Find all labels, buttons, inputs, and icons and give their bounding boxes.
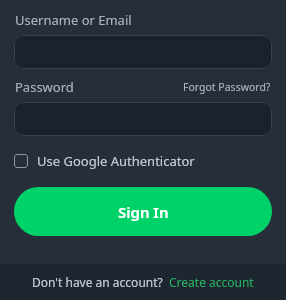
- staticText: Don't have an account?: [32, 274, 163, 290]
- staticText: Sign In: [118, 202, 169, 222]
- button[interactable]: Text input field: [14, 35, 272, 69]
- staticText: Create account: [169, 274, 254, 290]
- button[interactable]: Sign In: [14, 187, 272, 236]
- button[interactable]: Create account: [169, 274, 254, 290]
- button[interactable]: Text input field: [14, 102, 272, 136]
- staticText: Password: [15, 78, 74, 96]
- staticText: Username or Email: [15, 11, 132, 29]
- button[interactable]: Forgot Password?: [183, 80, 271, 94]
- staticText: Use Google Authenticator: [37, 152, 195, 170]
- staticText: Forgot Password?: [183, 80, 271, 94]
- button[interactable]: Use Google Authenticator: [14, 152, 195, 170]
